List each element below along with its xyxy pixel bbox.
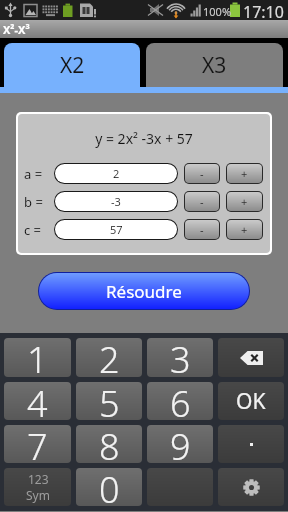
- staticText: 6: [170, 382, 191, 417]
- button[interactable]: 0: [76, 468, 142, 506]
- button[interactable]: -: [185, 192, 219, 211]
- button[interactable]: 1: [4, 338, 71, 377]
- staticText: 4: [27, 382, 48, 417]
- button[interactable]: 8: [76, 425, 142, 463]
- staticText: Sym: [26, 487, 50, 503]
- staticText: 17:10: [243, 1, 284, 21]
- button[interactable]: 4: [4, 382, 71, 420]
- button[interactable]: X2: [4, 43, 140, 87]
- button[interactable]: 2: [55, 164, 177, 183]
- staticText: 57: [110, 222, 123, 237]
- staticText: 3: [170, 338, 191, 374]
- staticText: 123: [28, 471, 49, 487]
- button[interactable]: 7: [4, 425, 71, 463]
- staticText: -3: [111, 194, 121, 209]
- staticText: Résoudre: [106, 280, 182, 303]
- button[interactable]: +: [227, 220, 262, 239]
- staticText: -: [200, 222, 204, 237]
- button[interactable]: Delete: [218, 338, 284, 377]
- staticText: 8: [99, 425, 120, 460]
- button[interactable]: Settings: [218, 468, 284, 506]
- staticText: 5: [99, 382, 120, 417]
- staticText: +: [241, 166, 248, 181]
- staticText: X2: [60, 51, 85, 80]
- staticText: 1: [27, 338, 48, 374]
- button[interactable]: 6: [147, 382, 213, 420]
- button[interactable]: +: [227, 192, 262, 211]
- staticText: c =: [24, 221, 54, 239]
- staticText: b =: [24, 193, 54, 211]
- staticText: y = 2x² -3x + 57: [18, 129, 270, 148]
- staticText: -: [200, 194, 204, 209]
- staticText: +: [241, 222, 248, 237]
- button[interactable]: Symbols: [4, 468, 71, 506]
- staticText: 7: [27, 425, 48, 460]
- button[interactable]: Decimal point: [218, 425, 284, 463]
- button[interactable]: Résoudre: [39, 273, 249, 309]
- staticText: 2: [113, 166, 120, 181]
- staticText: X²-X³: [3, 22, 30, 37]
- staticText: +: [241, 194, 248, 209]
- button[interactable]: +: [227, 164, 262, 183]
- button[interactable]: OK: [218, 382, 284, 420]
- button[interactable]: Space: [147, 468, 213, 506]
- button[interactable]: -: [185, 220, 219, 239]
- button[interactable]: 3: [147, 338, 213, 377]
- button[interactable]: 57: [55, 220, 177, 239]
- button[interactable]: 5: [76, 382, 142, 420]
- staticText: 100%: [203, 4, 232, 19]
- staticText: X3: [202, 51, 227, 80]
- staticText: a =: [24, 165, 54, 183]
- staticText: -: [200, 166, 204, 181]
- staticText: 2: [99, 338, 120, 374]
- button[interactable]: 9: [147, 425, 213, 463]
- staticText: 0: [99, 468, 120, 503]
- staticText: 9: [170, 425, 191, 460]
- button[interactable]: 2: [76, 338, 142, 377]
- button[interactable]: -: [185, 164, 219, 183]
- button[interactable]: -3: [55, 192, 177, 211]
- staticText: OK: [236, 387, 266, 416]
- button[interactable]: X3: [146, 43, 283, 87]
